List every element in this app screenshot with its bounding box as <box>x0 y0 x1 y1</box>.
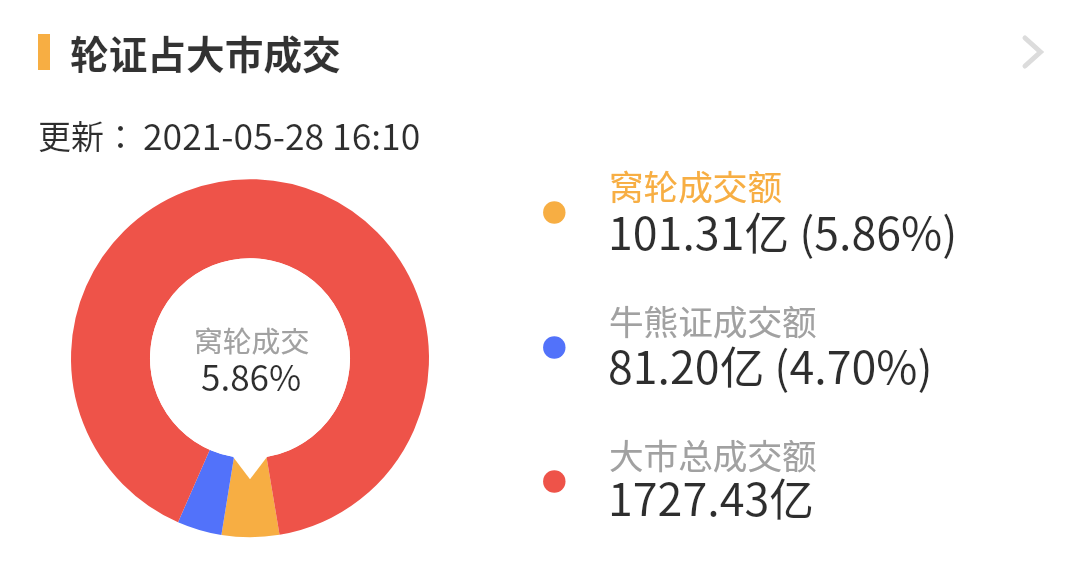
staticText: 101.31亿 (5.86%) <box>608 198 958 263</box>
button[interactable]: 窝轮成交额 <box>520 148 1000 270</box>
button[interactable]: 牛熊证成交额 <box>520 283 1000 405</box>
staticText: 1727.43亿 <box>608 464 814 529</box>
staticText: 牛熊证成交额 <box>609 295 817 345</box>
button[interactable]: 大市总成交额 <box>520 417 1000 539</box>
staticText: 窝轮成交额 <box>609 160 782 210</box>
button[interactable]: 窝轮成交 <box>150 310 350 406</box>
button[interactable]: 轮证占大市成交 <box>0 8 1077 94</box>
staticText: 2021-05-28 16:10 <box>143 109 421 160</box>
staticText: 窝轮成交 <box>194 319 310 361</box>
staticText: 大市总成交额 <box>609 429 817 479</box>
staticText: 轮证占大市成交 <box>70 24 341 80</box>
staticText: 81.20亿 (4.70%) <box>608 332 933 397</box>
button[interactable]: Open details <box>1002 23 1058 79</box>
staticText: 更新： <box>38 111 137 159</box>
staticText: 5.86% <box>201 350 302 401</box>
